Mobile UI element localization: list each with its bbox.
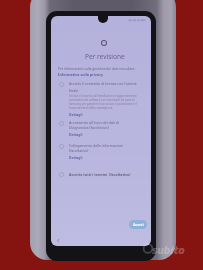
- button[interactable]: Back: [55, 237, 61, 243]
- staticText: Dettagli: [69, 155, 83, 160]
- staticText: Dettagli: [69, 112, 83, 117]
- button[interactable]: Dettagli: [69, 132, 89, 137]
- staticText: Per informazioni sulla gestione dei dati…: [58, 66, 135, 71]
- staticText: Acconsento all'invio dei dati di Diagnos…: [69, 120, 137, 130]
- staticText: Incluso il consenso all'installazione e …: [69, 94, 137, 110]
- staticText: Dettagli: [69, 132, 83, 137]
- button[interactable]: Dettagli: [69, 155, 89, 160]
- button[interactable]: Checkbox: [58, 81, 64, 87]
- staticText: Collegamento delle informazioni (facolta…: [69, 143, 137, 153]
- button[interactable]: Informativa sulla privacy: [58, 72, 118, 78]
- staticText: Accetto il contratto di licenza con l'ut…: [69, 81, 137, 94]
- staticText: Per revisione: [85, 51, 125, 61]
- button[interactable]: Dettagli: [69, 112, 89, 117]
- staticText: Avanti: [133, 222, 144, 227]
- button[interactable]: Checkbox: [58, 143, 64, 149]
- staticText: Accetto tutti i termini (facoltativo): [69, 172, 137, 178]
- button[interactable]: Avanti: [129, 220, 147, 229]
- staticText: subito: [152, 242, 185, 257]
- button[interactable]: Checkbox: [58, 171, 64, 177]
- staticText: Informativa sulla privacy: [58, 72, 104, 78]
- button[interactable]: Checkbox: [58, 120, 64, 126]
- button[interactable]: [58, 170, 136, 180]
